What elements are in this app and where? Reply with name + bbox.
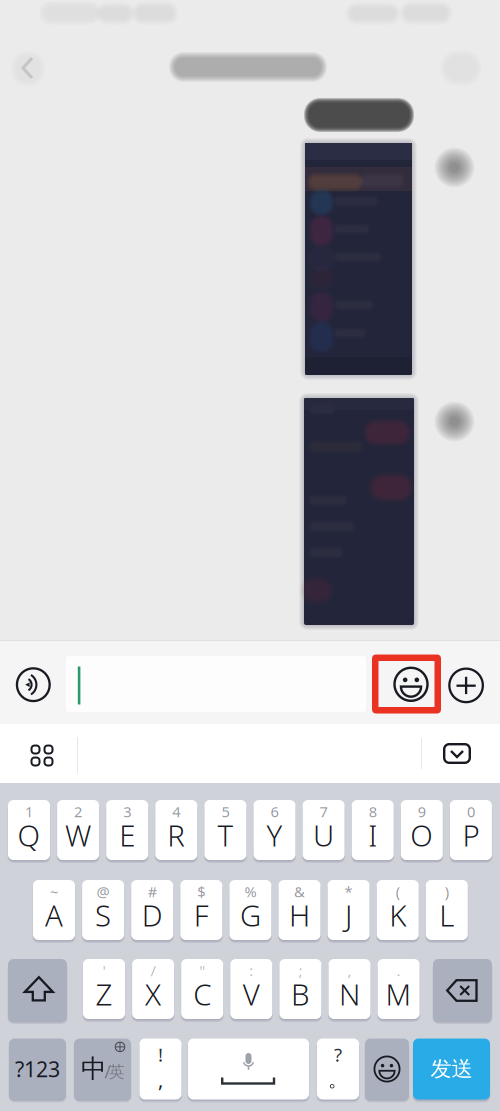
staticText: 发送 (430, 1056, 472, 1082)
button[interactable]: ' (0, 0, 500, 1111)
staticText: 4 (172, 802, 180, 821)
staticText: ? (334, 1042, 342, 1067)
button[interactable]: 8 (0, 0, 500, 1111)
staticText: ?123 (15, 1055, 60, 1083)
staticText: W (65, 815, 91, 854)
button[interactable]: 中 (0, 0, 500, 1111)
staticText: 中 (81, 1053, 106, 1084)
button[interactable]: More (0, 0, 500, 1111)
staticText: 5 (221, 802, 229, 821)
staticText: ; (298, 961, 302, 980)
button[interactable] (0, 0, 500, 1111)
staticText: / (104, 1060, 110, 1083)
staticText: ( (396, 882, 400, 901)
button[interactable]: 7 (0, 0, 500, 1111)
staticText: 。 (328, 1067, 348, 1092)
button[interactable]: ! (0, 0, 500, 1111)
staticText: $ (197, 882, 205, 901)
staticText: 0 (467, 802, 475, 821)
button[interactable]: % (0, 0, 500, 1111)
staticText: , (347, 961, 351, 980)
button[interactable]: / (0, 0, 500, 1111)
staticText: B (291, 974, 310, 1013)
staticText: N (339, 974, 360, 1013)
button[interactable]: @ (0, 0, 500, 1111)
button[interactable]: 1 (0, 0, 500, 1111)
staticText: 3 (123, 802, 131, 821)
button[interactable]: & (0, 0, 500, 1111)
staticText: Q (17, 815, 40, 854)
button[interactable]: Voice message (0, 0, 500, 1111)
staticText: T (217, 815, 233, 854)
staticText: L (439, 895, 454, 934)
staticText: # (148, 882, 157, 901)
button[interactable]: , (0, 0, 500, 1111)
staticText: S (95, 895, 111, 934)
staticText: 英 (108, 1062, 124, 1082)
button[interactable]: 0 (0, 0, 500, 1111)
staticText: 1 (25, 802, 33, 821)
staticText: @ (97, 882, 110, 901)
button[interactable]: Keyboard panels (0, 0, 500, 1111)
staticText: D (142, 895, 163, 934)
staticText: P (462, 815, 479, 854)
staticText: % (244, 882, 256, 901)
button[interactable]: . (0, 0, 500, 1111)
staticText: , (158, 1066, 163, 1093)
staticText: O (410, 815, 433, 854)
staticText: X (145, 974, 161, 1013)
staticText: Y (266, 815, 282, 854)
staticText: K (389, 895, 406, 934)
staticText: E (119, 815, 135, 854)
staticText: ~ (50, 882, 58, 901)
staticText: ! (158, 1042, 163, 1067)
staticText: R (167, 815, 185, 854)
staticText: " (199, 961, 205, 980)
button[interactable]: 6 (0, 0, 500, 1111)
button[interactable]: ? (0, 0, 500, 1111)
button[interactable]: 5 (0, 0, 500, 1111)
button[interactable]: : (0, 0, 500, 1111)
button[interactable]: 4 (0, 0, 500, 1111)
staticText: . (397, 961, 401, 980)
button[interactable] (0, 0, 500, 1111)
button[interactable]: Chat info (0, 0, 500, 1111)
staticText: 6 (270, 802, 278, 821)
staticText: G (240, 895, 261, 934)
staticText: 2 (74, 802, 82, 821)
staticText: M (386, 974, 412, 1013)
button[interactable]: ( (0, 0, 500, 1111)
staticText: U (313, 815, 334, 854)
button[interactable]: 2 (0, 0, 500, 1111)
staticText: * (345, 882, 353, 901)
button[interactable] (0, 0, 500, 1111)
staticText: Z (95, 974, 112, 1013)
button[interactable]: Back (0, 0, 500, 1111)
staticText: A (45, 895, 63, 934)
button[interactable]: ) (0, 0, 500, 1111)
button[interactable]: ~ (0, 0, 500, 1111)
staticText: H (289, 895, 310, 934)
staticText: 9 (418, 802, 426, 821)
button[interactable]: 9 (0, 0, 500, 1111)
staticText: & (294, 882, 305, 901)
button[interactable]: Emoji (0, 0, 500, 1111)
staticText: : (249, 961, 253, 980)
staticText: V (243, 974, 260, 1013)
button[interactable]: 3 (0, 0, 500, 1111)
button[interactable]: $ (0, 0, 500, 1111)
staticText: ' (102, 961, 105, 980)
staticText: J (345, 895, 352, 934)
button[interactable] (0, 0, 500, 1111)
button[interactable]: 发送 (0, 0, 500, 1111)
button[interactable]: Hide keyboard (0, 0, 500, 1111)
staticText: 7 (320, 802, 328, 821)
button[interactable]: " (0, 0, 500, 1111)
staticText: ) (445, 882, 449, 901)
staticText: F (194, 895, 209, 934)
button[interactable]: ; (0, 0, 500, 1111)
staticText: 8 (369, 802, 377, 821)
button[interactable]: # (0, 0, 500, 1111)
button[interactable]: * (0, 0, 500, 1111)
button[interactable]: ?123 (0, 0, 500, 1111)
